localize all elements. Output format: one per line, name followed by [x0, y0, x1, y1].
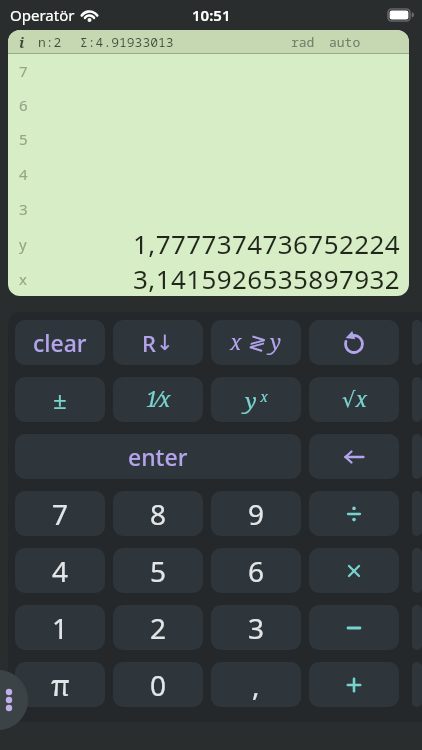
- staticText: 5: [150, 552, 167, 590]
- button[interactable]: 1: [15, 605, 105, 650]
- button[interactable]: y x: [211, 377, 301, 422]
- staticText: clear: [33, 327, 87, 358]
- staticText: 6: [248, 552, 265, 590]
- staticText: rad: [291, 33, 315, 51]
- staticText: 3: [19, 199, 28, 219]
- staticText: y: [19, 234, 27, 254]
- button[interactable]: 8: [113, 491, 203, 536]
- button[interactable]: 9: [211, 491, 301, 536]
- button[interactable]: [309, 320, 399, 365]
- button[interactable]: 1⁄x: [113, 377, 203, 422]
- staticText: i: [19, 32, 25, 52]
- staticText: enter: [128, 441, 188, 472]
- button[interactable]: [309, 662, 399, 707]
- button[interactable]: 0: [113, 662, 203, 707]
- staticText: ,: [252, 666, 260, 704]
- button[interactable]: √x: [309, 377, 399, 422]
- staticText: 4: [52, 552, 69, 590]
- staticText: Operatör: [10, 5, 75, 25]
- staticText: 7: [52, 495, 69, 533]
- staticText: 3,1415926535897932: [133, 261, 400, 296]
- button[interactable]: x ≷ y: [211, 320, 301, 365]
- staticText: 2: [150, 609, 167, 647]
- staticText: auto: [329, 33, 361, 51]
- staticText: y x: [245, 385, 268, 415]
- button[interactable]: enter: [15, 434, 301, 479]
- staticText: 10:51: [192, 5, 231, 25]
- button[interactable]: 7: [15, 491, 105, 536]
- button[interactable]: [309, 434, 399, 479]
- button[interactable]: 2: [113, 605, 203, 650]
- staticText: 1⁄x: [146, 385, 171, 414]
- staticText: 4: [19, 164, 28, 184]
- staticText: x ≷ y: [230, 328, 282, 357]
- staticText: 8: [150, 495, 167, 533]
- staticText: 7: [19, 61, 28, 81]
- button[interactable]: [0, 670, 28, 730]
- button[interactable]: R: [113, 320, 203, 365]
- button[interactable]: [309, 548, 399, 593]
- staticText: 3: [248, 609, 265, 647]
- button[interactable]: ,: [211, 662, 301, 707]
- button[interactable]: 5: [113, 548, 203, 593]
- staticText: R: [142, 328, 156, 358]
- staticText: 1,7777374736752224: [133, 226, 400, 261]
- staticText: Σ:4.91933013: [80, 33, 174, 51]
- button[interactable]: π: [15, 662, 105, 707]
- button[interactable]: [309, 605, 399, 650]
- staticText: 6: [19, 95, 28, 115]
- staticText: 9: [248, 495, 265, 533]
- button[interactable]: 6: [211, 548, 301, 593]
- button[interactable]: 4: [15, 548, 105, 593]
- staticText: n:2: [38, 33, 62, 51]
- staticText: π: [51, 665, 70, 704]
- staticText: 1: [52, 609, 69, 647]
- button[interactable]: clear: [15, 320, 105, 365]
- button[interactable]: ±: [15, 377, 105, 422]
- button[interactable]: [309, 491, 399, 536]
- staticText: 0: [150, 666, 167, 704]
- staticText: ±: [53, 383, 67, 416]
- staticText: ↓: [156, 331, 174, 355]
- staticText: √x: [342, 385, 367, 414]
- staticText: x: [19, 269, 27, 289]
- button[interactable]: 3: [211, 605, 301, 650]
- staticText: 5: [19, 129, 28, 149]
